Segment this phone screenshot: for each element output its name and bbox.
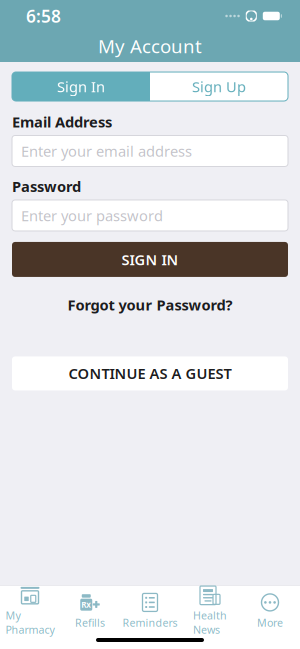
button[interactable]: Rx xyxy=(60,589,120,633)
staticText: More xyxy=(257,615,283,630)
button[interactable]: Sign Up xyxy=(150,72,288,101)
staticText: Reminders xyxy=(122,615,177,630)
staticText: Forgot your Password? xyxy=(67,295,232,314)
staticText: SIGN IN xyxy=(121,250,178,269)
staticText: Enter your email address xyxy=(21,141,192,161)
button[interactable]: My Pharmacy xyxy=(0,589,60,633)
button[interactable]: Reminders xyxy=(120,589,180,633)
staticText: Sign Up xyxy=(192,77,246,96)
staticText: 6:58 xyxy=(26,4,61,27)
button[interactable]: CONTINUE AS A GUEST xyxy=(12,356,288,390)
staticText: CONTINUE AS A GUEST xyxy=(68,364,231,383)
button[interactable]: More xyxy=(240,589,300,633)
staticText: My Pharmacy xyxy=(5,608,54,637)
button[interactable]: SIGN IN xyxy=(12,242,288,277)
staticText: Enter your password xyxy=(21,206,163,225)
button[interactable]: Health News xyxy=(180,589,240,633)
staticText: My Account xyxy=(98,34,202,58)
staticText: Sign In xyxy=(57,77,105,96)
staticText: Refills xyxy=(75,615,105,630)
button[interactable]: Enter your email address xyxy=(12,135,288,166)
staticText: Password xyxy=(12,176,81,196)
button[interactable]: Enter your password xyxy=(12,200,288,231)
button[interactable]: Sign In xyxy=(12,72,150,101)
staticText: Health News xyxy=(193,608,227,637)
button[interactable]: Forgot your Password? xyxy=(24,289,276,320)
staticText: Rx xyxy=(81,599,91,610)
staticText: Email Address xyxy=(12,112,112,131)
